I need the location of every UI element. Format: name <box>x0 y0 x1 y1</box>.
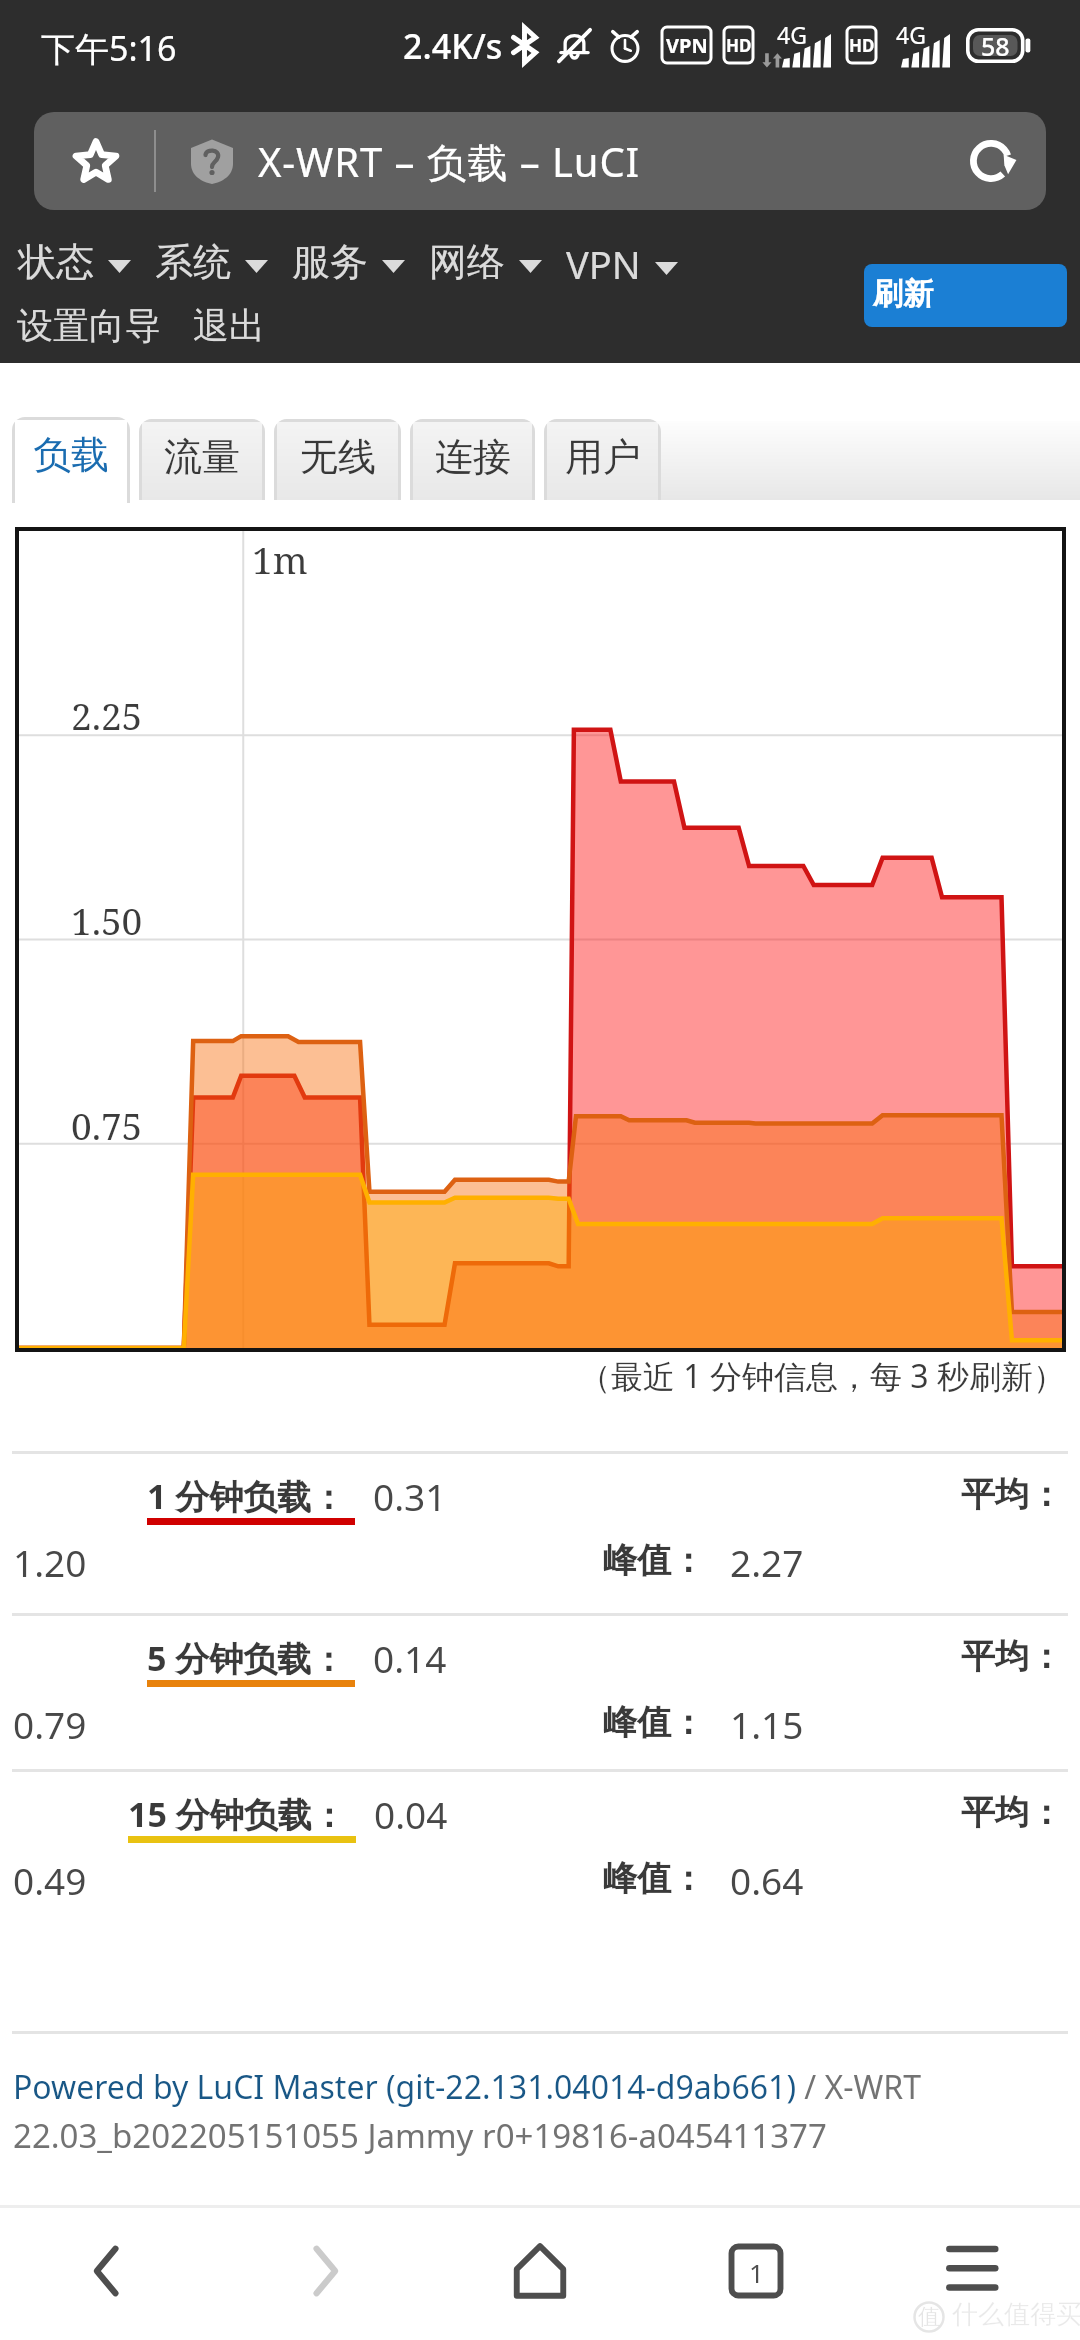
staticText: 0.49 <box>13 1855 87 1905</box>
staticText: 系统 <box>155 238 231 286</box>
staticText: 15 分钟负载： <box>128 1791 346 1837</box>
staticText: 5 分钟负载： <box>147 1635 346 1681</box>
button[interactable]: 系统 <box>147 234 276 290</box>
staticText: VPN <box>666 32 708 59</box>
staticText: 2.27 <box>730 1537 804 1587</box>
other: Bookmark <box>71 136 121 186</box>
button[interactable]: 用户 <box>544 419 661 500</box>
button[interactable]: 刷新 <box>864 264 1067 327</box>
staticText: 4G <box>777 19 807 50</box>
staticText: 连接 <box>435 433 511 481</box>
button[interactable]: 状态 <box>10 234 139 290</box>
staticText: 1.15 <box>730 1699 804 1749</box>
staticText: 设置向导 <box>17 303 161 348</box>
staticText: HD <box>849 34 875 57</box>
staticText: 什么值得买 <box>952 2298 1080 2331</box>
staticText: 1.20 <box>13 1537 87 1587</box>
staticText: 0.64 <box>730 1855 804 1905</box>
button[interactable]: 网络 <box>421 234 550 290</box>
staticText: 0.79 <box>13 1699 87 1749</box>
button[interactable]: 服务 <box>284 234 413 290</box>
staticText: 0.75 <box>71 1100 143 1150</box>
staticText: 刷新 <box>873 275 933 313</box>
staticText: 1 <box>749 2255 764 2290</box>
staticText: VPN <box>566 238 641 290</box>
button[interactable]: Bookmark <box>34 112 1046 210</box>
staticText: 用户 <box>565 433 641 481</box>
button[interactable]: Home <box>432 2208 648 2340</box>
staticText: 平均： <box>961 1635 1063 1678</box>
other: Reload <box>969 139 1013 183</box>
button[interactable]: Forward <box>216 2208 432 2340</box>
staticText: 无线 <box>300 433 376 481</box>
staticText: 0.31 <box>373 1471 447 1521</box>
staticText: 退出 <box>193 303 265 348</box>
staticText: 2.4K/s <box>403 23 503 69</box>
staticText: 流量 <box>164 433 240 481</box>
staticText: HD <box>726 34 752 57</box>
button[interactable]: 无线 <box>274 419 401 500</box>
staticText: 网络 <box>429 238 505 286</box>
staticText: 服务 <box>292 238 368 286</box>
button[interactable]: 连接 <box>410 419 535 500</box>
staticText: 负载 <box>33 431 109 479</box>
staticText: 峰值： <box>603 1701 705 1744</box>
staticText: 4G <box>896 19 926 50</box>
button[interactable]: Powered by LuCI Master (git-22.131.04014… <box>13 2065 796 2109</box>
staticText: 1m <box>252 534 308 584</box>
staticText: 58 <box>981 29 1010 63</box>
staticText: 下午5:16 <box>41 25 177 71</box>
staticText: 1 分钟负载： <box>147 1473 346 1519</box>
button[interactable]: 负载 <box>12 417 130 503</box>
button[interactable]: 退出 <box>185 299 273 352</box>
button[interactable]: 流量 <box>139 419 265 500</box>
button[interactable]: 设置向导 <box>9 299 169 352</box>
staticText: （最近 1 分钟信息，每 3 秒刷新） <box>579 1354 1065 1398</box>
button[interactable]: VPN <box>558 234 686 294</box>
staticText: 2.25 <box>71 690 143 740</box>
staticText: 状态 <box>18 238 94 286</box>
staticText: 峰值： <box>603 1857 705 1900</box>
staticText: 0.04 <box>374 1789 448 1839</box>
button[interactable]: Back <box>0 2208 216 2340</box>
button[interactable]: Tabs <box>648 2208 864 2340</box>
staticText: / X-WRT <box>796 2065 922 2109</box>
button[interactable]: Menu <box>864 2208 1080 2340</box>
staticText: 0.14 <box>373 1633 447 1683</box>
staticText: 平均： <box>961 1473 1063 1516</box>
staticText: 峰值： <box>603 1539 705 1582</box>
staticText: X-WRT – 负载 – LuCI <box>258 134 641 189</box>
staticText: 22.03_b202205151055 Jammy r0+19816-a0454… <box>13 2113 827 2158</box>
staticText: 平均： <box>961 1791 1063 1834</box>
staticText: 值 <box>918 2303 940 2331</box>
staticText: 1.50 <box>71 895 143 945</box>
